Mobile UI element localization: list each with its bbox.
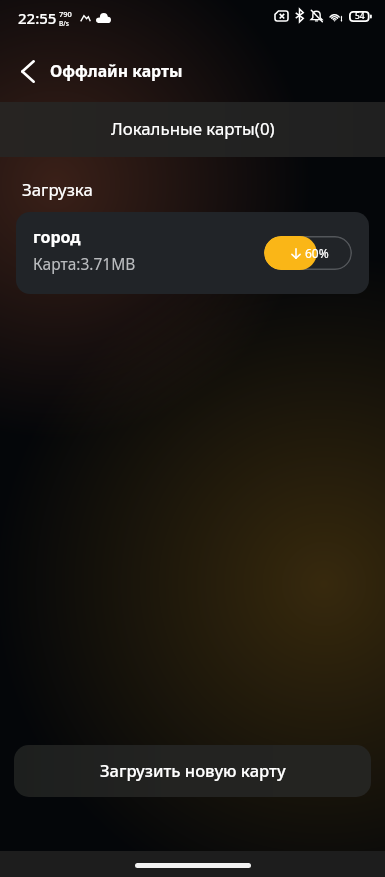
button[interactable]: Загрузить новую карту <box>14 745 371 797</box>
staticText: 54 <box>355 10 365 22</box>
button[interactable]: Pause download <box>264 236 352 270</box>
staticText: Загрузить новую карту <box>100 759 286 781</box>
button[interactable]: Back <box>0 45 52 97</box>
button[interactable]: Локальные карты(0) <box>0 102 385 157</box>
staticText: Карта:3.71MB <box>33 253 136 274</box>
staticText: Оффлайн карты <box>50 60 183 82</box>
staticText: Загрузка <box>22 178 93 201</box>
staticText: город <box>33 226 81 248</box>
staticText: Локальные карты(0) <box>111 117 275 140</box>
staticText: B/s <box>59 19 69 28</box>
staticText: 60% <box>305 245 329 261</box>
staticText: 790 <box>59 9 72 19</box>
button[interactable]: город <box>16 212 369 294</box>
staticText: 22:55 <box>18 8 57 28</box>
